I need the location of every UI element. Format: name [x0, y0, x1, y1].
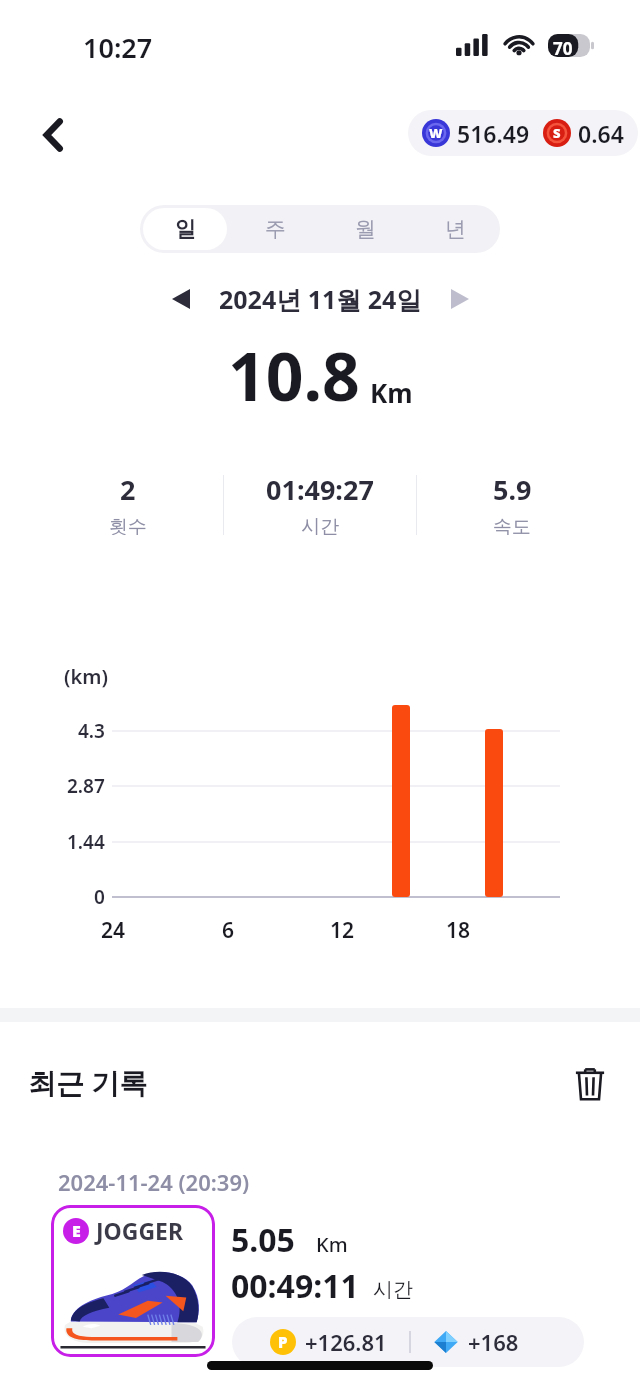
staticText: (km) [64, 663, 108, 690]
staticText: 18 [446, 916, 471, 945]
staticText: 0.64 [578, 118, 624, 149]
staticText: 24 [101, 916, 126, 945]
button[interactable]: P [232, 1317, 584, 1367]
staticText: Km [316, 1231, 348, 1258]
staticText: 속도 [493, 515, 531, 539]
staticText: W [429, 124, 443, 142]
staticText: 01:49:27 [266, 471, 374, 508]
staticText: 10.8 [228, 330, 360, 420]
staticText: 5.9 [493, 471, 532, 508]
button[interactable]: Back [22, 103, 86, 167]
staticText: 시간 [373, 1277, 413, 1302]
staticText: 2024-11-24 (20:39) [58, 1167, 250, 1197]
staticText: 5.05 [231, 1218, 295, 1262]
staticText: 516.49 [457, 118, 530, 149]
staticText: 4.3 [78, 718, 105, 744]
button[interactable]: E [51, 1205, 215, 1357]
button[interactable]: 일 [143, 208, 227, 250]
staticText: 1.44 [67, 829, 105, 855]
staticText: 년 [445, 216, 466, 242]
button[interactable]: 월 [323, 208, 407, 250]
staticText: Km [370, 375, 413, 410]
staticText: 2.87 [67, 773, 105, 799]
staticText: 00:49:11 [231, 1264, 359, 1308]
button[interactable]: 2 [33, 446, 607, 564]
staticText: 주 [265, 216, 286, 242]
staticText: 2024년 11월 24일 [219, 282, 422, 316]
button[interactable]: Previous day [157, 275, 205, 323]
button[interactable]: 2024-11-24 (20:39) [33, 1145, 607, 1375]
staticText: 0 [94, 884, 105, 910]
staticText: 시간 [301, 515, 339, 539]
staticText: 10:27 [83, 29, 153, 66]
button[interactable]: 년 [413, 208, 497, 250]
staticText: 6 [222, 916, 235, 945]
staticText: E [72, 1220, 81, 1242]
button[interactable]: Next day [436, 275, 484, 323]
button[interactable]: W [408, 110, 638, 156]
staticText: P [278, 1332, 288, 1352]
staticText: JOGGER [96, 1215, 184, 1246]
staticText: S [553, 124, 561, 142]
button[interactable]: Delete records [564, 1058, 616, 1110]
staticText: +168 [468, 1327, 519, 1357]
staticText: +126.81 [305, 1327, 387, 1357]
staticText: 70 [553, 37, 573, 60]
staticText: 최근 기록 [28, 1063, 148, 1101]
staticText: 일 [175, 216, 196, 242]
staticText: 12 [330, 916, 355, 945]
button[interactable]: 주 [233, 208, 317, 250]
staticText: 2 [120, 471, 136, 508]
staticText: 월 [355, 216, 376, 242]
staticText: 횟수 [109, 515, 147, 539]
